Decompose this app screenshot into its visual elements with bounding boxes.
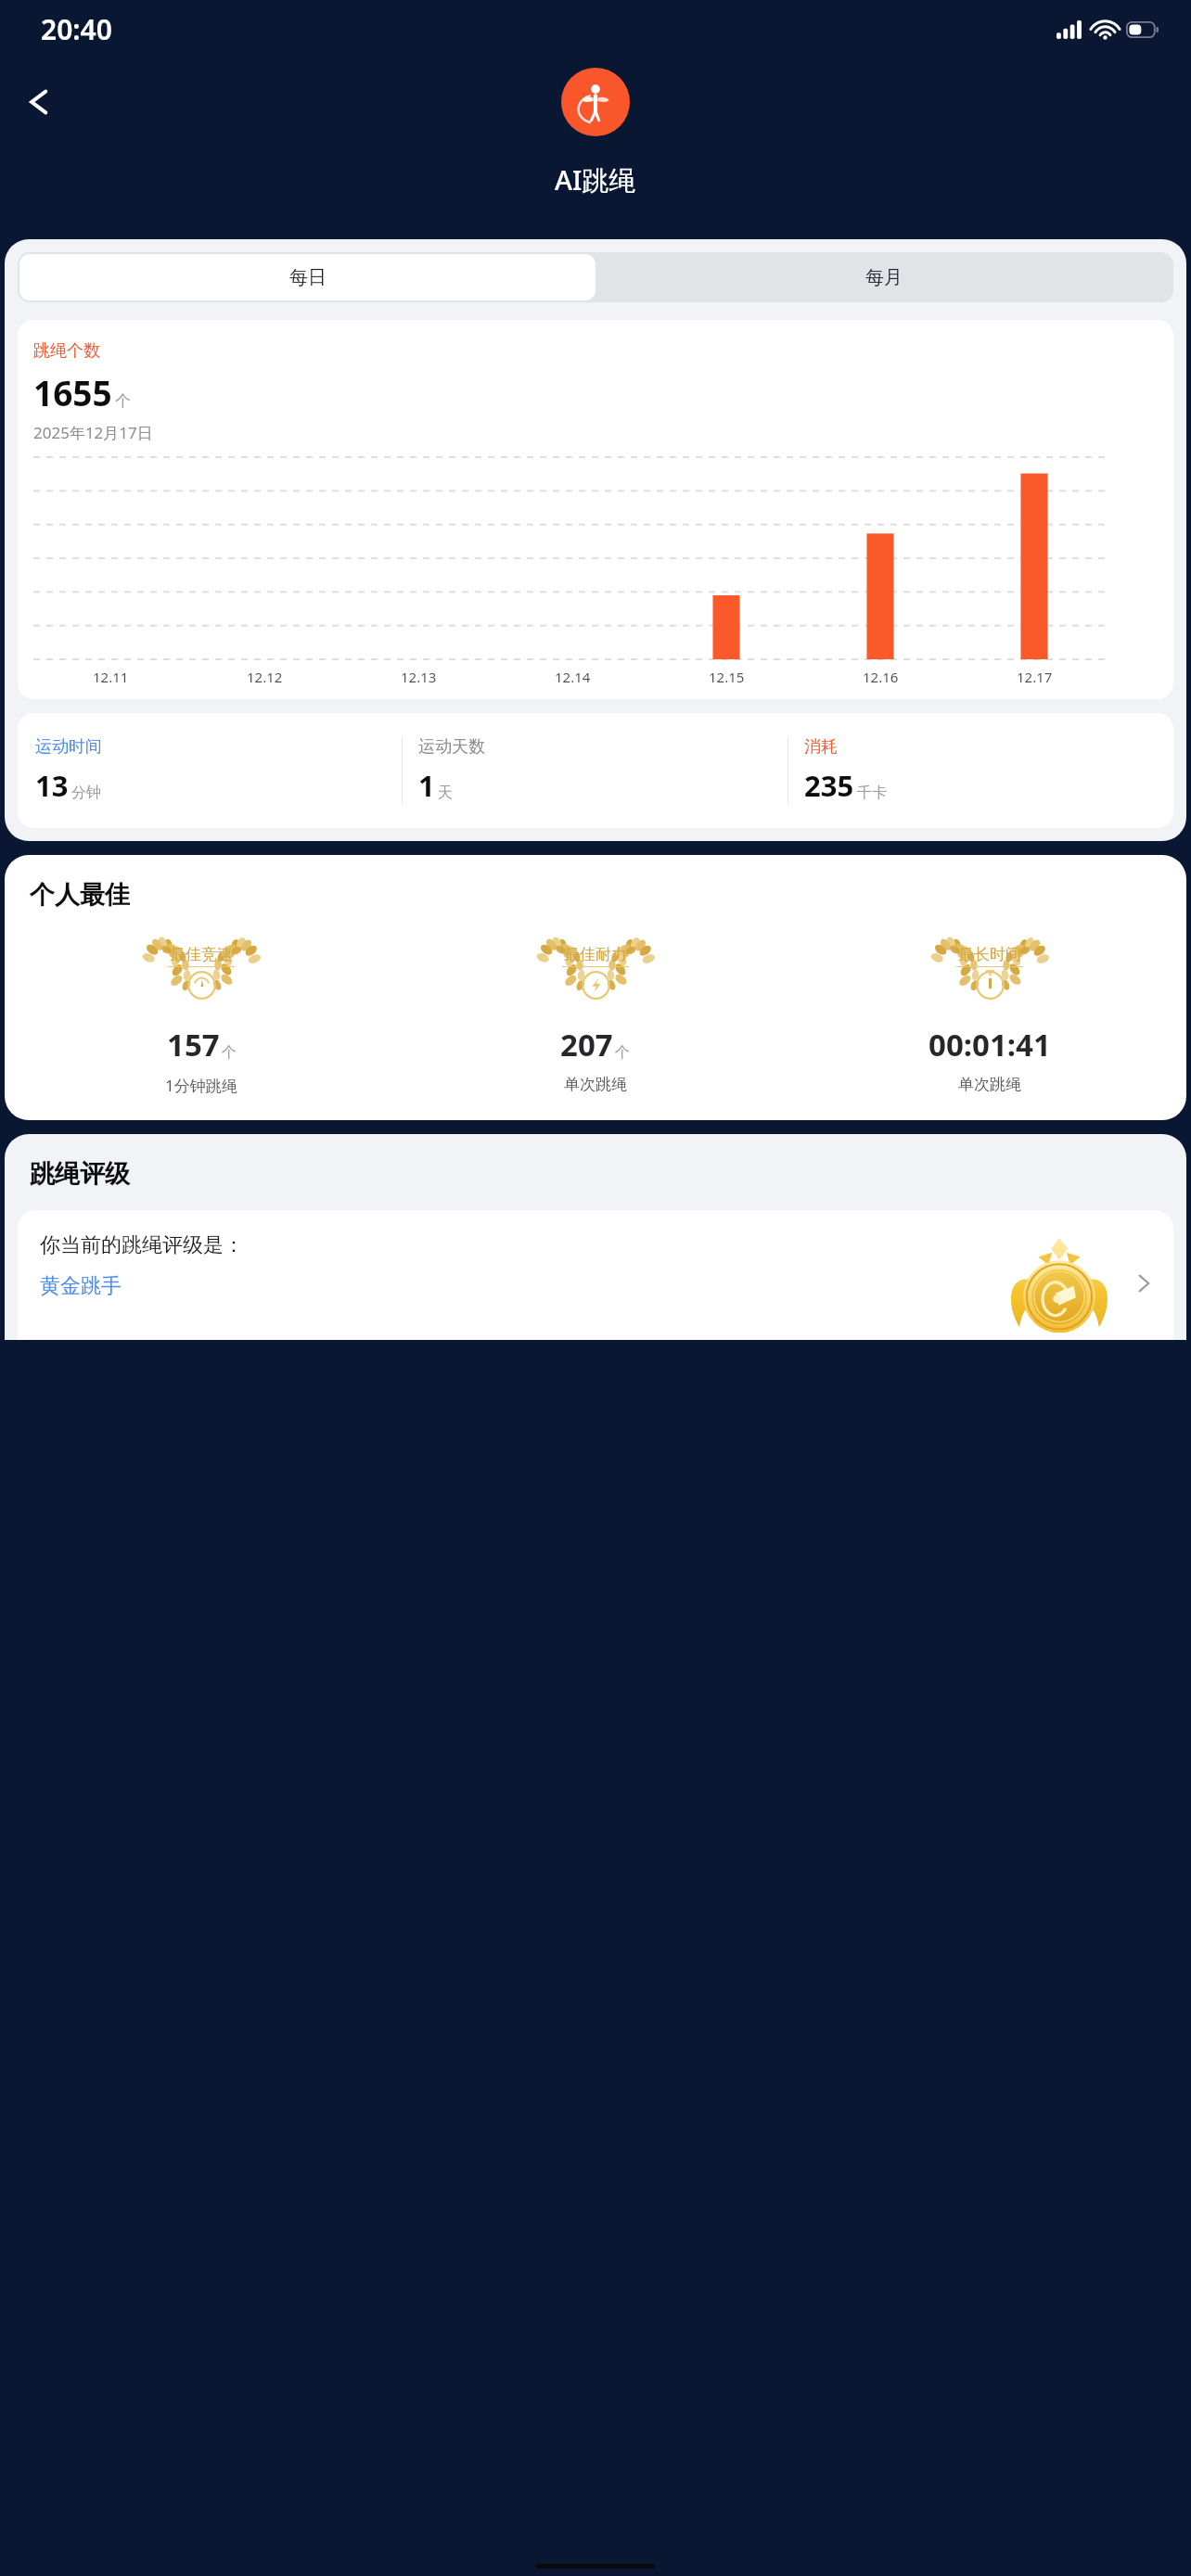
staticText: 黄金跳手 bbox=[40, 1273, 122, 1299]
staticText: 12.15 bbox=[709, 668, 745, 686]
button[interactable]: 最佳竞速 bbox=[5, 931, 398, 1096]
staticText: 207 bbox=[560, 1024, 613, 1065]
staticText: 235 bbox=[804, 766, 854, 805]
staticText: 12.12 bbox=[247, 668, 283, 686]
staticText: 单次跳绳 bbox=[958, 1075, 1021, 1094]
staticText: 消耗 bbox=[804, 736, 838, 758]
staticText: 1655 bbox=[33, 369, 112, 415]
other: More bbox=[1134, 1274, 1153, 1293]
button[interactable]: 最佳耐力 bbox=[398, 931, 792, 1094]
staticText: 最长时间 bbox=[958, 945, 1021, 964]
staticText: 12.14 bbox=[555, 668, 591, 686]
staticText: 跳绳个数 bbox=[33, 340, 100, 362]
staticText: 12.11 bbox=[93, 668, 129, 686]
staticText: 单次跳绳 bbox=[564, 1075, 627, 1094]
staticText: 你当前的跳绳评级是： bbox=[40, 1232, 244, 1258]
staticText: 每月 bbox=[865, 266, 903, 289]
button[interactable]: 每日 bbox=[19, 254, 595, 300]
staticText: 13 bbox=[35, 766, 69, 805]
button[interactable]: 每月 bbox=[595, 254, 1172, 300]
staticText: 个 bbox=[115, 391, 131, 411]
staticText: 12.17 bbox=[1017, 668, 1053, 686]
staticText: 最佳竞速 bbox=[170, 945, 233, 964]
staticText: 千卡 bbox=[857, 784, 887, 802]
button[interactable]: 你当前的跳绳评级是： bbox=[18, 1210, 1173, 1340]
staticText: 个人最佳 bbox=[30, 879, 130, 911]
staticText: 1分钟跳绳 bbox=[165, 1075, 237, 1096]
staticText: 12.16 bbox=[863, 668, 899, 686]
staticText: 个 bbox=[222, 1043, 237, 1062]
staticText: 12.13 bbox=[401, 668, 437, 686]
staticText: 最佳耐力 bbox=[564, 945, 627, 964]
staticText: 每日 bbox=[289, 266, 327, 289]
staticText: 1 bbox=[418, 766, 435, 805]
staticText: 天 bbox=[438, 784, 453, 802]
staticText: 00:01:41 bbox=[928, 1024, 1051, 1065]
button[interactable]: 最长时间 bbox=[792, 931, 1186, 1094]
button[interactable]: Back bbox=[11, 73, 69, 131]
staticText: 20:40 bbox=[41, 10, 112, 48]
staticText: AI跳绳 bbox=[555, 161, 636, 198]
staticText: 2025年12月17日 bbox=[33, 422, 153, 443]
staticText: 157 bbox=[167, 1024, 220, 1065]
staticText: 运动时间 bbox=[35, 736, 102, 758]
staticText: 分钟 bbox=[71, 784, 101, 802]
staticText: 跳绳评级 bbox=[30, 1158, 130, 1190]
staticText: 运动天数 bbox=[418, 736, 485, 758]
staticText: 个 bbox=[615, 1043, 630, 1062]
